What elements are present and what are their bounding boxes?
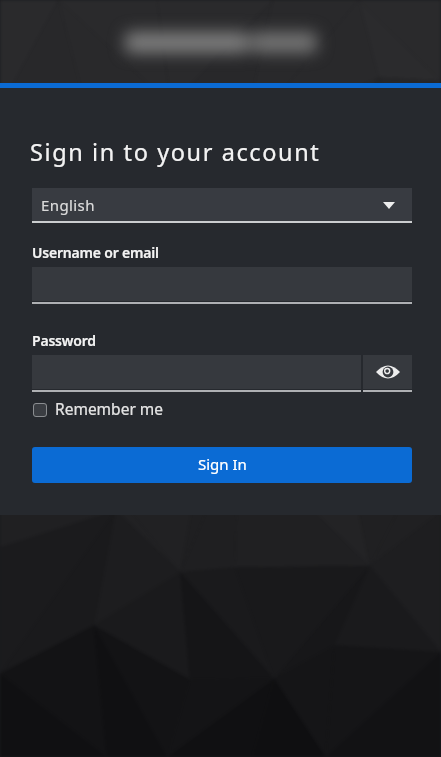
button[interactable]: English bbox=[32, 188, 412, 222]
staticText: English bbox=[41, 195, 95, 215]
staticText: Username or email bbox=[32, 243, 159, 262]
button[interactable] bbox=[363, 355, 412, 389]
staticText: Sign in to your account bbox=[30, 136, 321, 168]
staticText: Remember me bbox=[55, 398, 164, 419]
button[interactable]: Remember me bbox=[32, 398, 164, 419]
staticText: Password bbox=[32, 331, 96, 350]
button[interactable]: Sign In bbox=[32, 447, 412, 483]
staticText: Sign In bbox=[198, 454, 247, 474]
